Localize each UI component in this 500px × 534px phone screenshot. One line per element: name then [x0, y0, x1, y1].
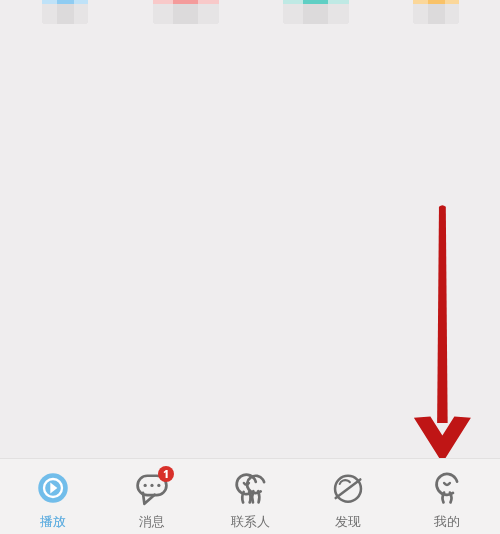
button[interactable]	[42, 0, 88, 24]
button[interactable]: 联系人	[205, 465, 295, 529]
button[interactable]: 发现	[303, 465, 393, 529]
staticText: 消息	[139, 513, 165, 529]
staticText: 我的	[434, 513, 460, 529]
staticText: 1	[163, 467, 169, 481]
staticText: 发现	[335, 513, 361, 529]
button[interactable]: 播放	[8, 465, 98, 529]
button[interactable]: 我的	[402, 465, 492, 529]
button[interactable]: 消息	[107, 465, 197, 529]
button[interactable]	[283, 0, 349, 24]
staticText: 播放	[40, 513, 66, 529]
staticText: 联系人	[231, 513, 270, 529]
button[interactable]	[413, 0, 459, 24]
button[interactable]	[153, 0, 219, 24]
